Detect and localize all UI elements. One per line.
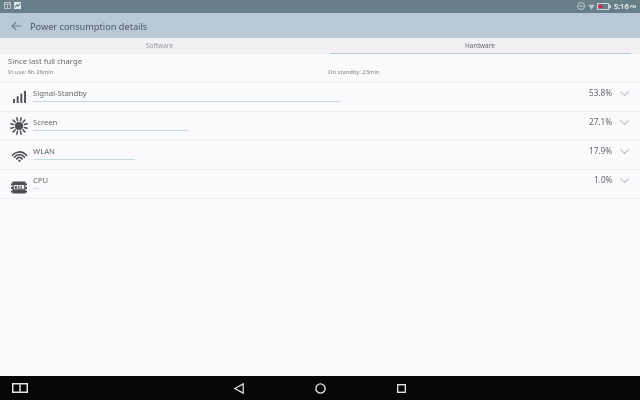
button[interactable]: Expand WLAN (615, 142, 633, 160)
button[interactable]: Signal-Standby (0, 83, 640, 112)
button[interactable]: Software (0, 38, 320, 54)
button[interactable]: Expand CPU (615, 171, 633, 189)
staticText: 27.1% (589, 116, 613, 127)
button[interactable]: Expand Screen (615, 113, 633, 131)
staticText: 1.0% (594, 174, 613, 185)
staticText: Software (146, 41, 174, 50)
staticText: CPU (33, 175, 49, 185)
button[interactable]: Expand Signal-Standby (615, 84, 633, 102)
staticText: Power consumption details (30, 20, 148, 33)
staticText: PM (630, 4, 637, 10)
button[interactable]: Recents (391, 378, 411, 398)
staticText: In use: 6h 26min (8, 68, 54, 76)
button[interactable]: Back (229, 378, 249, 398)
button[interactable]: Hardware (320, 38, 640, 54)
staticText: WLAN (33, 146, 55, 156)
staticText: Since last full charge (8, 56, 83, 66)
staticText: Hardware (465, 41, 495, 50)
button[interactable]: Back (0, 13, 28, 38)
staticText: On standby: 23min (328, 68, 380, 76)
button[interactable]: Split screen (8, 376, 32, 400)
staticText: 53.8% (589, 87, 613, 98)
button[interactable]: WLAN (0, 141, 640, 170)
staticText: Screen (33, 117, 58, 127)
button[interactable]: Screen (0, 112, 640, 141)
button[interactable]: CPU (0, 170, 640, 199)
staticText: 5:16 (614, 1, 629, 11)
staticText: 17.9% (589, 145, 613, 156)
staticText: Signal-Standby (33, 88, 87, 98)
button[interactable]: Home (310, 378, 330, 398)
